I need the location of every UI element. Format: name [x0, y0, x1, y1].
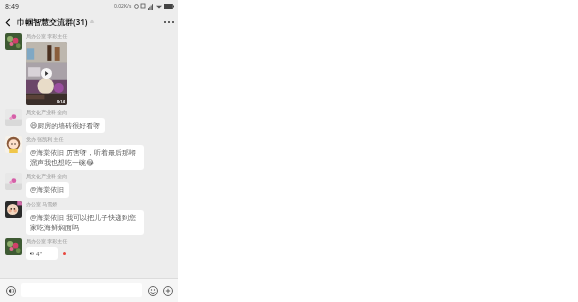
button[interactable]: More functions: [161, 284, 174, 297]
button[interactable]: Emoji: [146, 284, 159, 297]
button[interactable]: @海棠依旧 厉害呀，听着最后那嘚溜声我也想吃一碗😂: [26, 145, 144, 170]
staticText: @海棠依旧: [30, 185, 65, 195]
button[interactable]: Play video: [26, 42, 67, 105]
button[interactable]: @海棠依旧 我可以把儿子快递到您家吃海鲜焖面吗: [26, 210, 144, 235]
button[interactable]: More options: [160, 13, 178, 30]
staticText: 局文化产业科 全向: [26, 109, 68, 116]
button[interactable]: Back: [0, 14, 16, 30]
staticText: 0.02K/s: [114, 3, 132, 10]
staticText: @海棠依旧 厉害呀，听着最后那嘚溜声我也想吃一碗😂: [30, 148, 140, 167]
staticText: 8:49: [5, 2, 19, 12]
button[interactable]: Avatar: [5, 33, 22, 50]
staticText: 局文化产业科 全向: [26, 173, 68, 180]
button[interactable]: Avatar: [5, 238, 22, 255]
button[interactable]: Play voice message: [26, 247, 58, 260]
staticText: @海棠依旧 我可以把儿子快递到您家吃海鲜焖面吗: [30, 213, 140, 232]
button[interactable]: 😄厨房的墙砖很好看呀: [26, 118, 105, 133]
button[interactable]: Avatar: [5, 109, 22, 126]
button[interactable]: Voice input: [4, 284, 17, 297]
staticText: 党办 张凯利 主任: [26, 136, 64, 143]
staticText: 办公室 马雪娇: [26, 201, 58, 208]
staticText: 0:14: [57, 99, 65, 104]
staticText: 4": [36, 250, 42, 258]
button[interactable]: @海棠依旧: [26, 182, 69, 198]
staticText: 😄厨房的墙砖很好看呀: [30, 121, 101, 130]
staticText: 局办公室 李彩主任: [26, 33, 68, 40]
button[interactable]: Avatar: [5, 173, 22, 190]
staticText: 巾帼智慧交流群(31): [17, 16, 88, 27]
staticText: 局办公室 李彩主任: [26, 238, 68, 245]
button[interactable]: Avatar: [5, 201, 22, 218]
button[interactable]: Avatar: [5, 136, 22, 153]
